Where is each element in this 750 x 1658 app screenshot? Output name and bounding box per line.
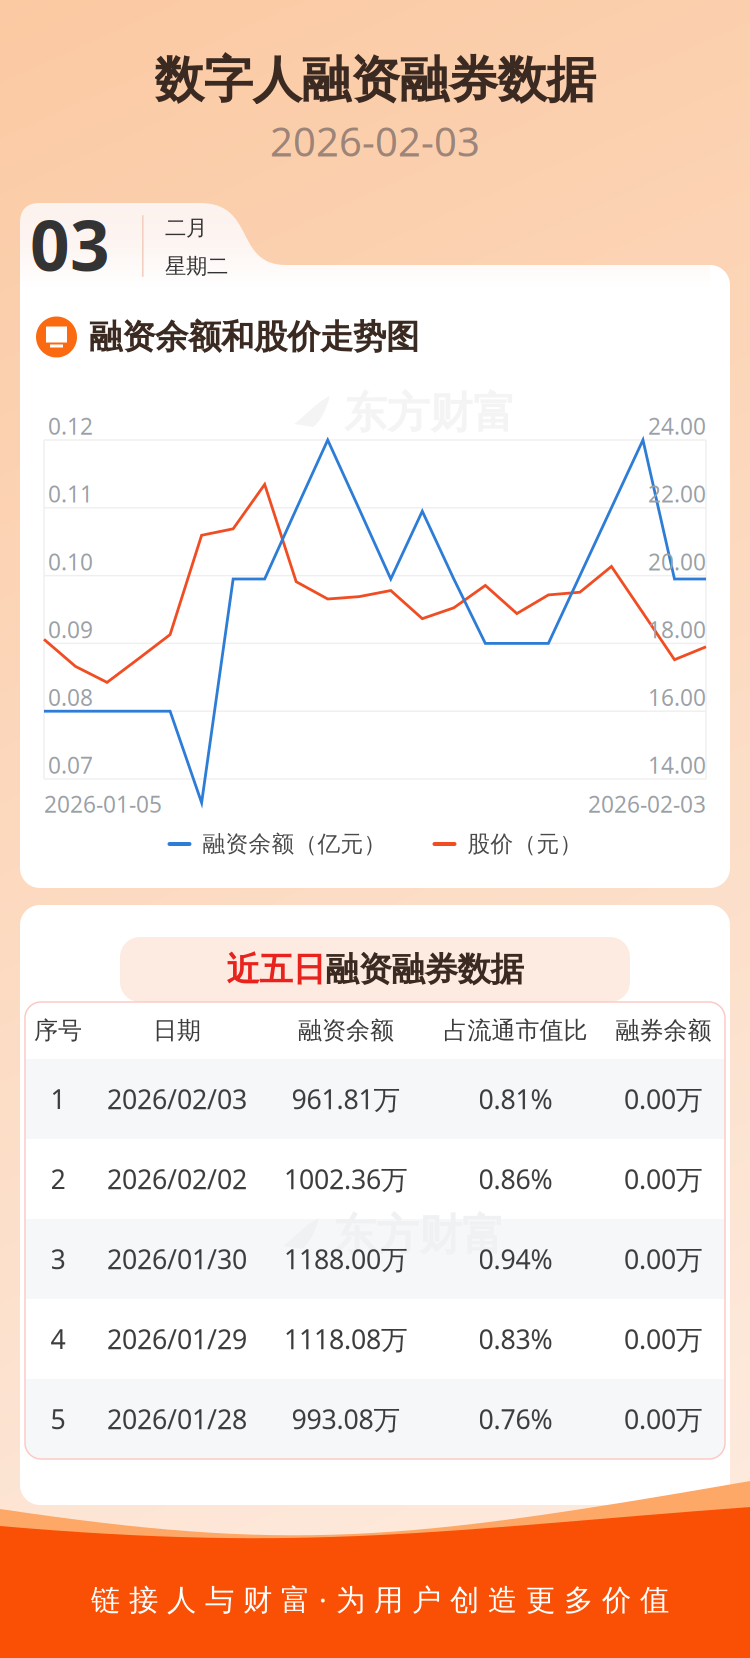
staticText: 0.94% <box>478 1241 552 1277</box>
staticText: 0.09 <box>48 614 93 644</box>
staticText: 2026/02/03 <box>107 1081 247 1117</box>
staticText: 2026/01/28 <box>107 1401 247 1437</box>
staticText: 2026/01/30 <box>107 1241 247 1277</box>
staticText: 20.00 <box>648 546 706 577</box>
staticText: 日期 <box>153 1016 201 1045</box>
staticText: 0.00万 <box>624 1321 703 1357</box>
staticText: 序号 <box>34 1016 82 1045</box>
staticText: 0.10 <box>48 546 93 577</box>
staticText: 03 <box>30 198 110 290</box>
staticText: 961.81万 <box>291 1081 400 1117</box>
staticText: 2026-01-05 <box>44 789 162 819</box>
staticText: 0.86% <box>478 1161 552 1197</box>
staticText: 22.00 <box>648 479 706 509</box>
staticText: 3 <box>50 1241 65 1277</box>
staticText: 1188.00万 <box>284 1241 408 1277</box>
staticText: 东方财富 <box>333 1209 505 1261</box>
staticText: 数字人融资融券数据 <box>154 50 595 110</box>
staticText: 0.11 <box>48 479 93 509</box>
staticText: 16.00 <box>648 682 706 712</box>
staticText: 1002.36万 <box>284 1161 408 1197</box>
staticText: 2026/01/29 <box>107 1321 247 1357</box>
staticText: 2026/02/02 <box>107 1161 247 1197</box>
staticText: 2026-02-03 <box>270 114 480 167</box>
staticText: 星期二 <box>165 253 228 279</box>
staticText: 1118.08万 <box>284 1321 408 1357</box>
staticText: 5 <box>50 1401 65 1437</box>
staticText: 0.00万 <box>624 1401 703 1437</box>
staticText: 融资余额和股价走势图 <box>89 316 419 357</box>
staticText: 14.00 <box>648 750 706 780</box>
staticText: 0.00万 <box>624 1081 703 1117</box>
staticText: 链接人与财富·为用户创造更多价值 <box>91 1579 669 1618</box>
button[interactable]: 链接人与财富·为用户创造更多价值 <box>5 1577 750 1621</box>
staticText: 股价（元） <box>467 830 582 858</box>
staticText: 0.00万 <box>624 1241 703 1277</box>
staticText: 993.08万 <box>291 1401 400 1437</box>
staticText: 0.08 <box>48 682 93 712</box>
staticText: 0.81% <box>478 1081 552 1117</box>
staticText: 2026-02-03 <box>588 789 706 819</box>
staticText: 2 <box>50 1161 65 1197</box>
staticText: 4 <box>50 1321 65 1357</box>
staticText: 融资余额（亿元） <box>202 830 386 858</box>
staticText: 占流通市值比 <box>443 1016 587 1045</box>
staticText: 0.12 <box>48 411 93 441</box>
staticText: 0.76% <box>478 1401 552 1437</box>
staticText: 二月 <box>165 215 207 241</box>
staticText: 融券余额 <box>615 1016 711 1045</box>
staticText: 24.00 <box>648 411 706 441</box>
staticText: 融资余额 <box>298 1016 394 1045</box>
staticText: 0.07 <box>48 750 93 780</box>
staticText: 0.00万 <box>624 1161 703 1197</box>
staticText: 1 <box>50 1081 65 1117</box>
staticText: 0.83% <box>478 1321 552 1357</box>
staticText: 融资融券数据 <box>325 949 523 990</box>
staticText: 近五日 <box>226 949 325 990</box>
staticText: 18.00 <box>648 614 706 644</box>
staticText: 东方财富 <box>344 387 516 439</box>
